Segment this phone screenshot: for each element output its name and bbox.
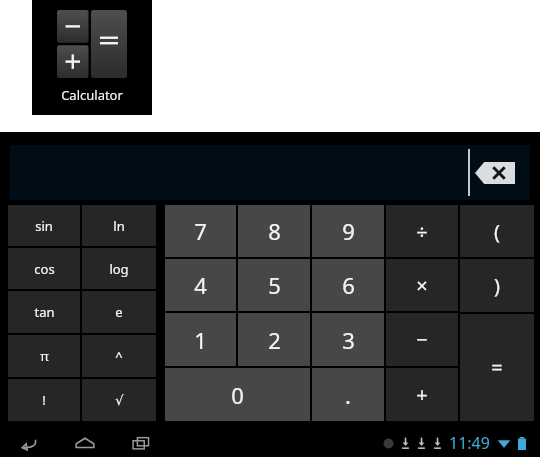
staticText: 8 — [268, 216, 281, 246]
button[interactable]: − — [386, 313, 458, 366]
button[interactable]: Calculator — [32, 0, 152, 115]
staticText: . — [345, 380, 351, 410]
button[interactable]: Back — [14, 429, 44, 457]
staticText: ! — [42, 391, 46, 409]
staticText: 3 — [342, 325, 355, 355]
button[interactable]: × — [386, 259, 458, 311]
button[interactable]: 0 — [165, 368, 310, 421]
button[interactable]: sin — [8, 205, 80, 246]
staticText: 2 — [268, 325, 281, 355]
button[interactable]: 3 — [312, 313, 384, 366]
staticText: cos — [34, 260, 55, 278]
button[interactable]: ln — [82, 205, 156, 246]
staticText: 11:49 — [449, 432, 490, 454]
button[interactable]: 2 — [238, 313, 310, 366]
button[interactable]: 4 — [165, 259, 236, 311]
button[interactable]: . — [312, 368, 384, 421]
button[interactable]: 9 — [312, 205, 384, 257]
button[interactable]: ! — [8, 379, 80, 421]
staticText: e — [115, 303, 123, 321]
button[interactable]: 7 — [165, 205, 236, 257]
staticText: 6 — [342, 270, 355, 300]
staticText: Calculator — [61, 86, 123, 104]
staticText: 0 — [231, 380, 244, 410]
staticText: ( — [494, 218, 500, 245]
staticText: ) — [494, 272, 500, 299]
staticText: ÷ — [416, 218, 428, 245]
staticText: π — [40, 347, 49, 365]
button[interactable]: + — [386, 368, 458, 421]
button[interactable]: 8 — [238, 205, 310, 257]
button[interactable]: Home — [70, 429, 100, 457]
staticText: tan — [34, 303, 55, 321]
staticText: + — [416, 381, 428, 408]
staticText: × — [416, 272, 428, 299]
button[interactable]: log — [82, 248, 156, 289]
staticText: ^ — [115, 347, 123, 365]
button[interactable]: ^ — [82, 335, 156, 377]
button[interactable]: = — [460, 314, 534, 421]
staticText: − — [416, 326, 428, 353]
staticText: = — [491, 354, 503, 381]
button[interactable]: ÷ — [386, 205, 458, 257]
button[interactable]: √ — [82, 379, 156, 421]
staticText: 9 — [342, 216, 355, 246]
staticText: log — [109, 260, 129, 278]
staticText: 5 — [268, 270, 281, 300]
staticText: 1 — [194, 325, 207, 355]
button[interactable]: 5 — [238, 259, 310, 311]
button[interactable]: 6 — [312, 259, 384, 311]
staticText: 7 — [194, 216, 207, 246]
button[interactable]: π — [8, 335, 80, 377]
staticText: sin — [35, 217, 53, 235]
button[interactable]: Backspace — [473, 160, 517, 186]
staticText: √ — [115, 393, 124, 408]
button[interactable]: ) — [460, 259, 534, 312]
button[interactable]: ( — [460, 205, 534, 257]
button[interactable]: tan — [8, 291, 80, 333]
button[interactable]: cos — [8, 248, 80, 289]
button[interactable]: 1 — [165, 313, 236, 366]
button[interactable]: Recent apps — [126, 429, 156, 457]
button[interactable]: e — [82, 291, 156, 333]
staticText: 4 — [194, 270, 207, 300]
staticText: ln — [113, 217, 125, 235]
